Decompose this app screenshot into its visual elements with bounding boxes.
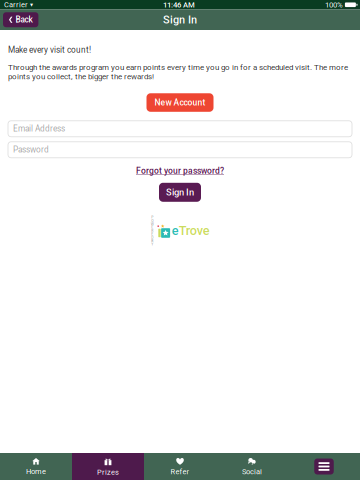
button[interactable]: Refer [144, 453, 216, 480]
staticText: Sign In [166, 187, 194, 198]
staticText: Through the awards program you earn poin… [8, 63, 348, 81]
staticText: P [151, 215, 153, 219]
staticText: New Account [154, 97, 205, 107]
button[interactable]: Back [3, 12, 38, 27]
staticText: ▾ [30, 1, 33, 8]
button[interactable]: Menu [288, 453, 360, 480]
staticText: Password [13, 145, 49, 155]
staticText: O [151, 219, 153, 223]
staticText: Refer [170, 467, 189, 476]
staticText: Carrier [4, 0, 28, 9]
staticText: Social [242, 467, 262, 476]
staticText: B [151, 239, 153, 243]
staticText: Prizes [97, 468, 119, 476]
button[interactable]: Sign In [159, 183, 201, 202]
button[interactable]: Forgot your password? [136, 166, 224, 176]
staticText: Sign In [163, 13, 197, 26]
staticText: Make every visit count! [8, 45, 91, 55]
staticText: D [151, 235, 153, 240]
staticText: E [151, 232, 153, 236]
staticText: Home [26, 467, 46, 476]
staticText: W [151, 222, 154, 226]
staticText: Back [15, 15, 32, 25]
staticText: Trove [179, 223, 210, 238]
staticText: 11:46 AM [163, 0, 195, 9]
staticText: Email Address [13, 124, 65, 134]
button[interactable]: Prizes [72, 453, 144, 480]
button[interactable]: Social [216, 453, 288, 480]
staticText: Forgot your password? [136, 166, 224, 176]
button[interactable]: Home [0, 453, 72, 480]
button[interactable]: New Account [146, 93, 213, 112]
staticText: E [151, 225, 153, 229]
staticText: R [151, 229, 153, 233]
staticText: Y [151, 242, 153, 246]
staticText: 100% [325, 0, 343, 9]
staticText: e [172, 223, 179, 238]
